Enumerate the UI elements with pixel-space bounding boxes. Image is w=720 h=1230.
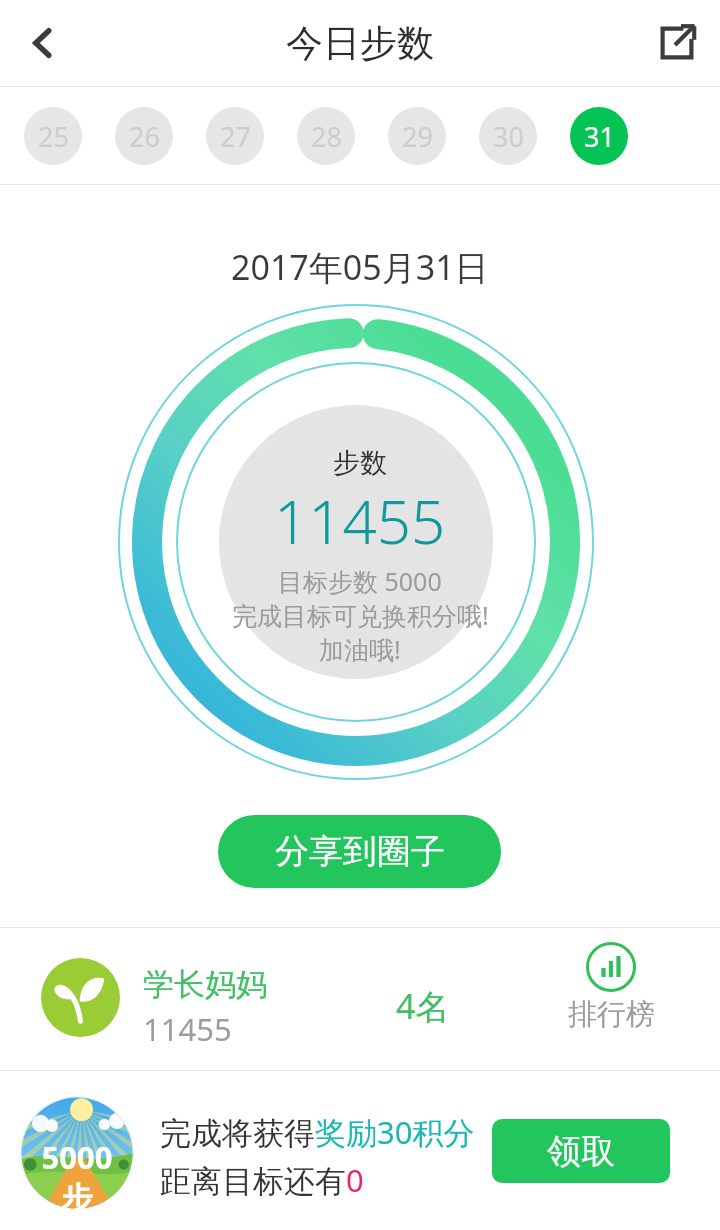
button[interactable]: 29 [388,107,446,165]
staticText: 步数 [333,446,387,480]
staticText: 28 [311,118,342,155]
staticText: 11455 [143,1008,232,1050]
staticText: 2017年05月31日 [231,244,489,290]
staticText: 加油哦! [319,632,401,666]
staticText: 4名 [396,983,450,1029]
button[interactable]: 30 [479,107,537,165]
staticText: 27 [220,118,251,155]
button[interactable]: Back [0,0,86,86]
staticText: 26 [129,118,160,155]
staticText: 25 [38,118,69,155]
staticText: 完成将获得奖励30积分 [160,1111,475,1153]
staticText: 5000步 [28,1136,126,1218]
staticText: 31 [584,118,615,155]
button[interactable]: 25 [24,107,82,165]
staticText: 领取 [547,1130,615,1173]
staticText: 距离目标还有0 [160,1159,364,1201]
staticText: 11455 [274,480,446,562]
staticText: 30 [493,118,524,155]
button[interactable]: 31 [570,107,628,165]
button[interactable]: 排行榜 [556,942,666,1033]
staticText: 29 [402,118,433,155]
button[interactable]: 26 [115,107,173,165]
button[interactable]: 27 [206,107,264,165]
button[interactable]: Share [634,0,720,86]
button[interactable]: 分享到圈子 [218,815,501,888]
button[interactable]: 领取 [492,1119,670,1183]
staticText: 完成目标可兑换积分哦! [232,598,489,632]
staticText: 排行榜 [568,996,655,1033]
staticText: 分享到圈子 [275,830,445,873]
staticText: 今日步数 [286,20,434,67]
staticText: 学长妈妈 [143,965,267,1004]
button[interactable]: 28 [297,107,355,165]
staticText: 目标步数 5000 [278,564,442,598]
